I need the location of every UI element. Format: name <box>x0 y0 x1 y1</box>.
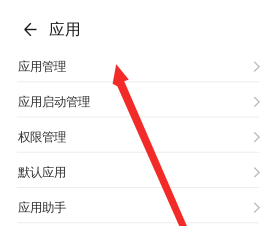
staticText: 权限管理 <box>18 129 66 145</box>
staticText: 应用启动管理 <box>18 94 90 110</box>
button[interactable]: 应用管理 <box>0 47 270 82</box>
button[interactable]: 应用启动管理 <box>0 82 270 117</box>
button[interactable]: 应用助手 <box>0 188 270 223</box>
button[interactable]: 权限管理 <box>0 117 270 153</box>
staticText: 应用助手 <box>18 200 66 215</box>
staticText: 默认应用 <box>18 165 66 180</box>
button[interactable]: 默认应用 <box>0 153 270 188</box>
staticText: 应用 <box>49 20 81 39</box>
staticText: 应用管理 <box>18 59 66 74</box>
button[interactable]: Back <box>15 14 45 44</box>
